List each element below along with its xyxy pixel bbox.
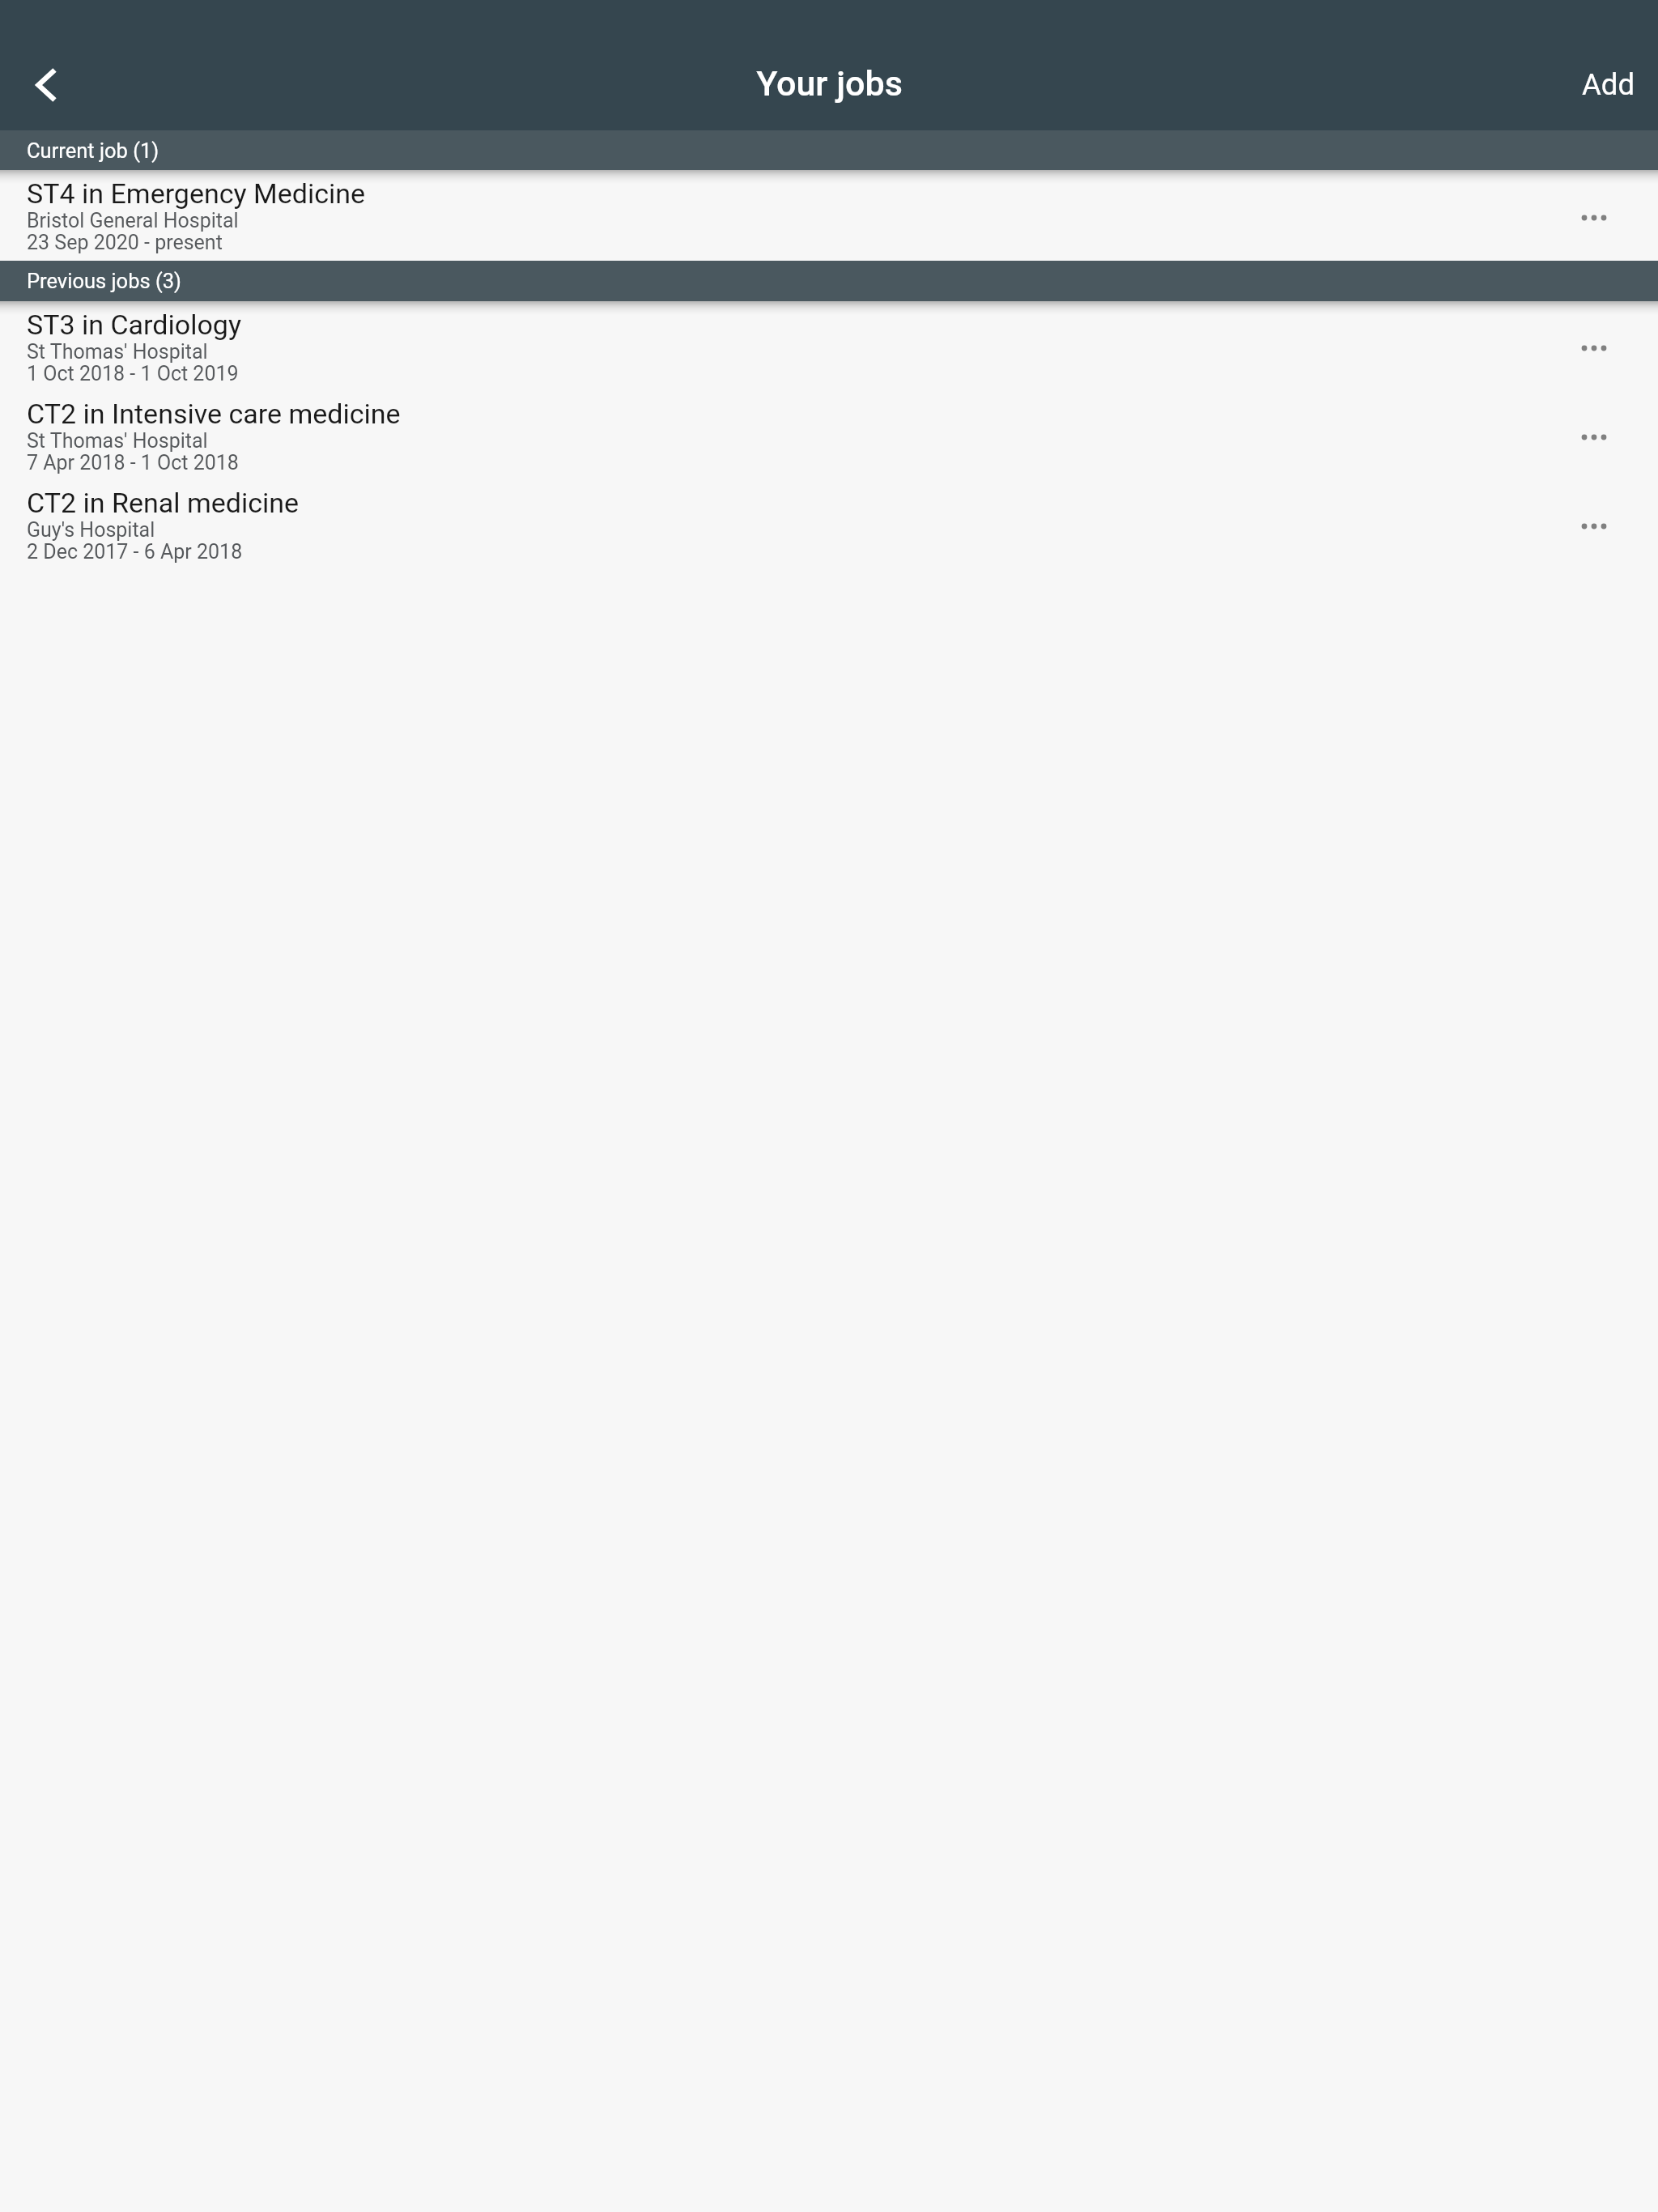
button[interactable]: Back xyxy=(0,40,91,130)
staticText: CT2 in Intensive care medicine xyxy=(27,400,401,429)
button[interactable]: More options xyxy=(1550,393,1639,482)
staticText: St Thomas' Hospital 7 Apr 2018 - 1 Oct 2… xyxy=(27,431,239,474)
staticText: Your jobs xyxy=(756,63,903,104)
button[interactable]: ST3 in Cardiology xyxy=(0,301,1658,390)
staticText: Previous jobs (3) xyxy=(27,270,181,293)
button[interactable]: CT2 in Intensive care medicine xyxy=(0,390,1658,479)
button[interactable]: More options xyxy=(1550,173,1639,262)
button[interactable]: ST4 in Emergency Medicine xyxy=(0,170,1658,261)
staticText: Current job (1) xyxy=(27,140,159,163)
staticText: Add xyxy=(1582,67,1635,102)
staticText: Bristol General Hospital 23 Sep 2020 - p… xyxy=(27,211,239,254)
staticText: ST4 in Emergency Medicine xyxy=(27,180,366,209)
staticText: St Thomas' Hospital 1 Oct 2018 - 1 Oct 2… xyxy=(27,342,239,385)
staticText: CT2 in Renal medicine xyxy=(27,489,300,518)
button[interactable]: More options xyxy=(1550,304,1639,393)
button[interactable]: More options xyxy=(1550,482,1639,571)
staticText: ST3 in Cardiology xyxy=(27,311,241,340)
button[interactable]: Add xyxy=(1558,43,1658,126)
staticText: Guy's Hospital 2 Dec 2017 - 6 Apr 2018 xyxy=(27,520,243,564)
button[interactable]: CT2 in Renal medicine xyxy=(0,479,1658,568)
